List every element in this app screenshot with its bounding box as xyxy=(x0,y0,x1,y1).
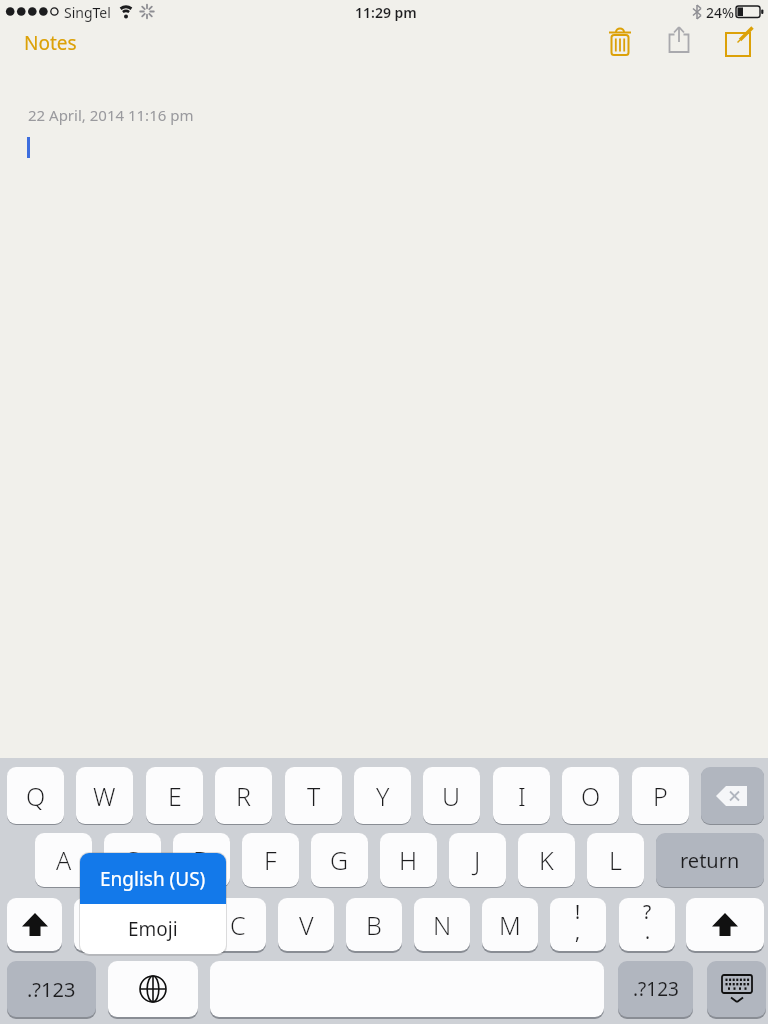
button[interactable]: K xyxy=(518,833,575,887)
staticText: V xyxy=(299,908,314,942)
staticText: Emoji xyxy=(128,916,178,942)
button[interactable]: I xyxy=(493,767,550,824)
staticText: A xyxy=(56,843,72,877)
staticText: .?123 xyxy=(27,976,76,1003)
staticText: 11:29 pm xyxy=(355,3,417,22)
button[interactable]: P xyxy=(632,767,689,824)
staticText: B xyxy=(366,908,382,942)
staticText: O xyxy=(581,779,601,813)
button[interactable]: return xyxy=(656,833,764,887)
staticText: F xyxy=(264,843,277,877)
button[interactable] xyxy=(686,898,764,951)
button[interactable]: X xyxy=(142,898,198,951)
button[interactable]: R xyxy=(215,767,272,824)
button[interactable]: G xyxy=(311,833,368,887)
button[interactable]: Y xyxy=(354,767,411,824)
staticText: Y xyxy=(376,779,390,813)
button[interactable]: F xyxy=(242,833,299,887)
staticText: K xyxy=(539,843,554,877)
button[interactable]: T xyxy=(285,767,342,824)
staticText: U xyxy=(442,779,461,813)
staticText: P xyxy=(653,779,668,813)
button[interactable]: O xyxy=(562,767,619,824)
staticText: ! xyxy=(575,899,581,925)
staticText: SingTel xyxy=(64,3,111,22)
button[interactable] xyxy=(108,961,198,1017)
button[interactable] xyxy=(707,961,766,1017)
staticText: S xyxy=(126,843,140,877)
button[interactable]: ? xyxy=(619,898,675,951)
button[interactable] xyxy=(724,26,754,58)
button[interactable]: J xyxy=(449,833,506,887)
button[interactable]: S xyxy=(104,833,161,887)
button[interactable]: H xyxy=(380,833,437,887)
button[interactable]: A xyxy=(35,833,92,887)
staticText: . xyxy=(645,919,651,945)
staticText: E xyxy=(168,779,182,813)
staticText: D xyxy=(193,843,211,877)
button[interactable]: D xyxy=(173,833,230,887)
button[interactable]: M xyxy=(482,898,538,951)
staticText: J xyxy=(474,843,481,877)
staticText: English (US) xyxy=(100,866,206,892)
button[interactable]: .?123 xyxy=(618,961,693,1017)
button[interactable]: C xyxy=(210,898,266,951)
button[interactable]: V xyxy=(278,898,334,951)
staticText: H xyxy=(399,843,418,877)
staticText: I xyxy=(518,779,526,813)
staticText: R xyxy=(236,779,251,813)
button[interactable]: Notes xyxy=(20,30,80,56)
button[interactable]: English (US) xyxy=(80,853,226,904)
button[interactable]: N xyxy=(414,898,470,951)
staticText: , xyxy=(575,919,581,945)
button[interactable] xyxy=(210,961,604,1017)
staticText: .?123 xyxy=(633,976,679,1002)
button[interactable]: B xyxy=(346,898,402,951)
button[interactable]: Q xyxy=(7,767,64,824)
staticText: T xyxy=(307,779,321,813)
staticText: X xyxy=(163,908,177,942)
staticText: L xyxy=(609,843,622,877)
button[interactable] xyxy=(701,767,764,824)
staticText: G xyxy=(330,843,349,877)
staticText: Notes xyxy=(24,30,77,56)
staticText: W xyxy=(93,779,116,813)
button[interactable]: Z xyxy=(74,898,130,951)
staticText: M xyxy=(499,908,521,942)
staticText: N xyxy=(433,908,452,942)
button[interactable]: U xyxy=(423,767,480,824)
button[interactable] xyxy=(664,26,694,58)
staticText: 22 April, 2014 11:16 pm xyxy=(28,105,194,125)
staticText: Q xyxy=(26,779,46,813)
button[interactable]: Emoji xyxy=(80,904,226,954)
button[interactable]: W xyxy=(76,767,133,824)
staticText: 24% xyxy=(706,3,734,22)
button[interactable] xyxy=(605,26,635,58)
button[interactable]: E xyxy=(146,767,203,824)
button[interactable]: .?123 xyxy=(7,961,96,1017)
button[interactable]: ! xyxy=(550,898,606,951)
staticText: return xyxy=(680,847,740,874)
staticText: ? xyxy=(643,899,652,925)
button[interactable]: L xyxy=(587,833,644,887)
staticText: C xyxy=(230,908,246,942)
button[interactable] xyxy=(7,898,62,951)
